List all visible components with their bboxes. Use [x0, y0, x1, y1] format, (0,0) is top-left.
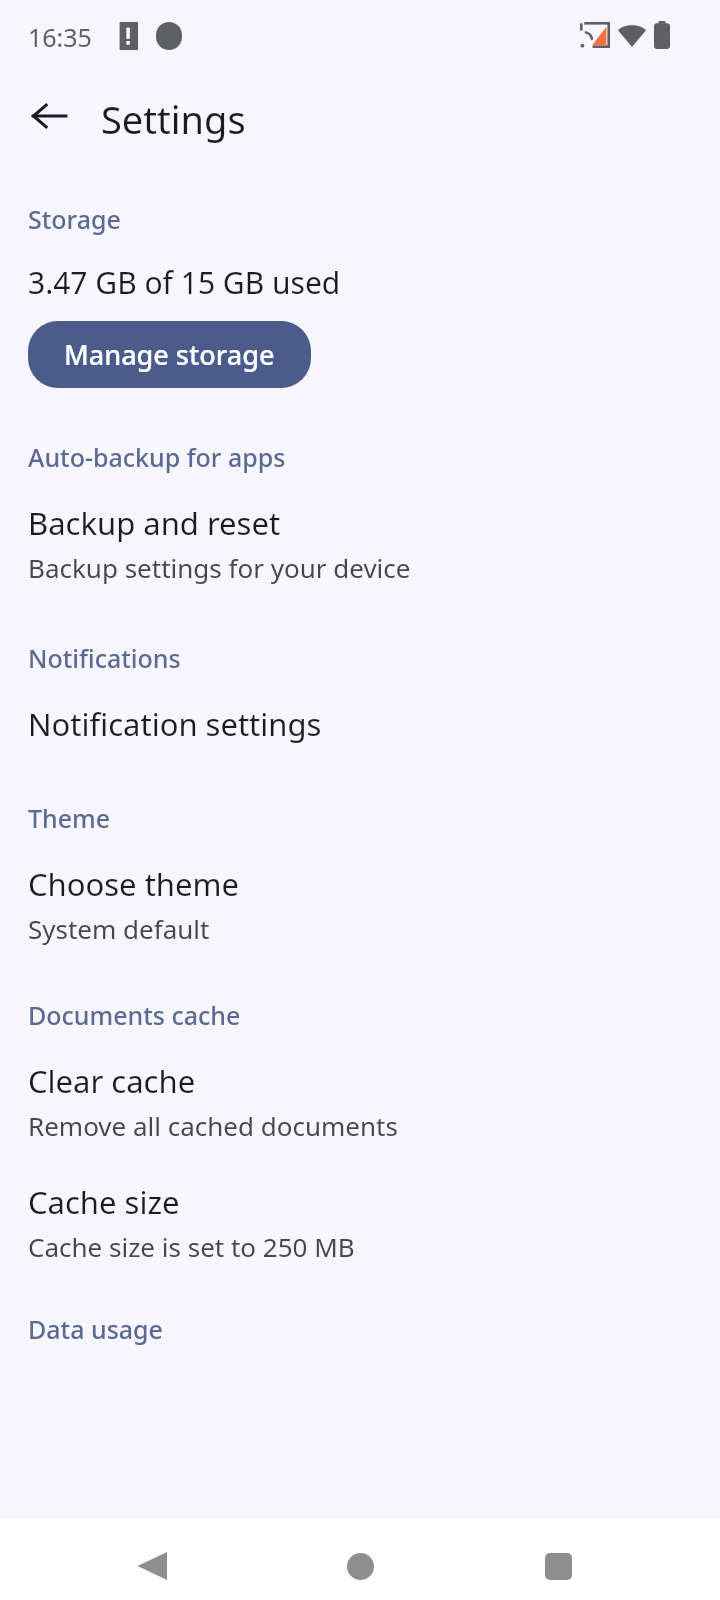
- button[interactable]: Choose theme: [0, 863, 720, 946]
- staticText: Clear cache: [28, 1060, 196, 1102]
- button[interactable]: Back: [117, 1531, 187, 1600]
- staticText: Auto-backup for apps: [28, 440, 286, 474]
- staticText: Data usage: [28, 1312, 163, 1346]
- button[interactable]: Back: [14, 81, 84, 151]
- staticText: Notifications: [28, 641, 181, 675]
- button[interactable]: Manage storage: [28, 321, 311, 388]
- staticText: Theme: [28, 801, 111, 835]
- staticText: Documents cache: [28, 998, 241, 1032]
- button[interactable]: Cache size: [0, 1181, 720, 1264]
- staticText: Remove all cached documents: [28, 1108, 398, 1143]
- button[interactable]: Backup and reset: [0, 502, 720, 585]
- staticText: Cache size: [28, 1181, 180, 1223]
- staticText: Backup and reset: [28, 502, 281, 544]
- staticText: Choose theme: [28, 863, 239, 905]
- staticText: 3.47 GB of 15 GB used: [28, 262, 341, 303]
- staticText: Settings: [101, 93, 246, 145]
- button[interactable]: Notification settings: [0, 703, 720, 745]
- staticText: 16:35: [28, 20, 92, 54]
- staticText: System default: [28, 911, 210, 946]
- button[interactable]: Recent apps: [523, 1531, 593, 1600]
- staticText: Storage: [28, 202, 121, 236]
- button[interactable]: Home: [325, 1531, 395, 1600]
- button[interactable]: Clear cache: [0, 1060, 720, 1143]
- staticText: Notification settings: [28, 703, 322, 745]
- staticText: Backup settings for your device: [28, 550, 411, 585]
- staticText: Cache size is set to 250 MB: [28, 1229, 355, 1264]
- staticText: Manage storage: [64, 336, 275, 373]
